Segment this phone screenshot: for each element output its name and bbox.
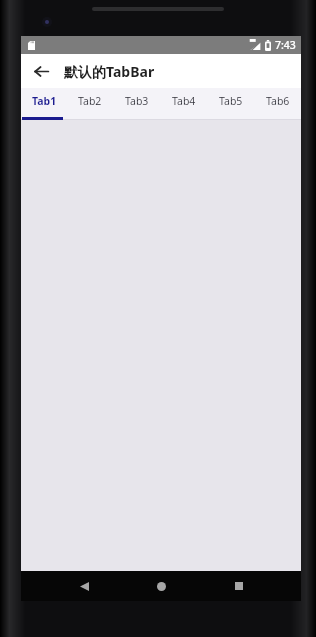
button[interactable]: Tab1 xyxy=(21,88,67,120)
button[interactable]: Tab6 xyxy=(254,88,301,120)
staticText: Tab5 xyxy=(219,94,243,108)
button[interactable]: Recent apps xyxy=(224,571,254,601)
button[interactable]: Tab5 xyxy=(207,88,254,120)
button[interactable]: Back xyxy=(69,571,99,601)
button[interactable]: Tab3 xyxy=(113,88,160,120)
button[interactable]: Tab4 xyxy=(160,88,207,120)
staticText: 7:43 xyxy=(275,38,296,52)
staticText: 默认的TabBar xyxy=(64,62,155,81)
button[interactable]: Tab2 xyxy=(67,88,113,120)
staticText: Tab1 xyxy=(32,94,57,108)
staticText: Tab6 xyxy=(266,94,290,108)
staticText: Tab3 xyxy=(125,94,149,108)
staticText: Tab4 xyxy=(172,94,196,108)
button[interactable]: Home xyxy=(146,571,176,601)
button[interactable]: Back xyxy=(26,56,56,86)
staticText: Tab2 xyxy=(78,94,102,108)
